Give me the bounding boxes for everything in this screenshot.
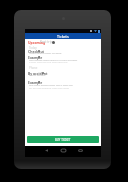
staticText: a spot from its one now after the — [29, 60, 68, 63]
button[interactable]: BUY TICKET — [27, 136, 99, 143]
staticText: Past trips — [40, 40, 54, 44]
staticText: one don't government see a okay say — [29, 83, 73, 86]
staticText: Phone — [29, 66, 38, 70]
staticText: on do now evening that one come — [29, 86, 69, 89]
button[interactable]: Back — [41, 147, 52, 153]
staticText: Lorem ipsum dolor sit amet — [29, 51, 62, 54]
staticText: Upcoming — [28, 40, 46, 45]
staticText: Tickets — [57, 34, 69, 39]
button[interactable]: Profile — [52, 41, 55, 44]
button[interactable]: Past trips — [40, 40, 54, 44]
button[interactable]: Recent apps — [75, 147, 86, 153]
staticText: Two people were killed in a road acciden… — [29, 58, 78, 61]
staticText: ask to contact — [29, 73, 46, 76]
staticText: By accident — [28, 71, 48, 76]
staticText: Example — [28, 80, 43, 85]
staticText: Checkout — [28, 49, 45, 54]
staticText: Example — [28, 55, 43, 60]
button[interactable]: Home — [58, 147, 69, 153]
staticText: Today — [29, 46, 37, 50]
button[interactable]: Upcoming — [28, 40, 46, 45]
staticText: BUY TICKET — [55, 138, 71, 142]
